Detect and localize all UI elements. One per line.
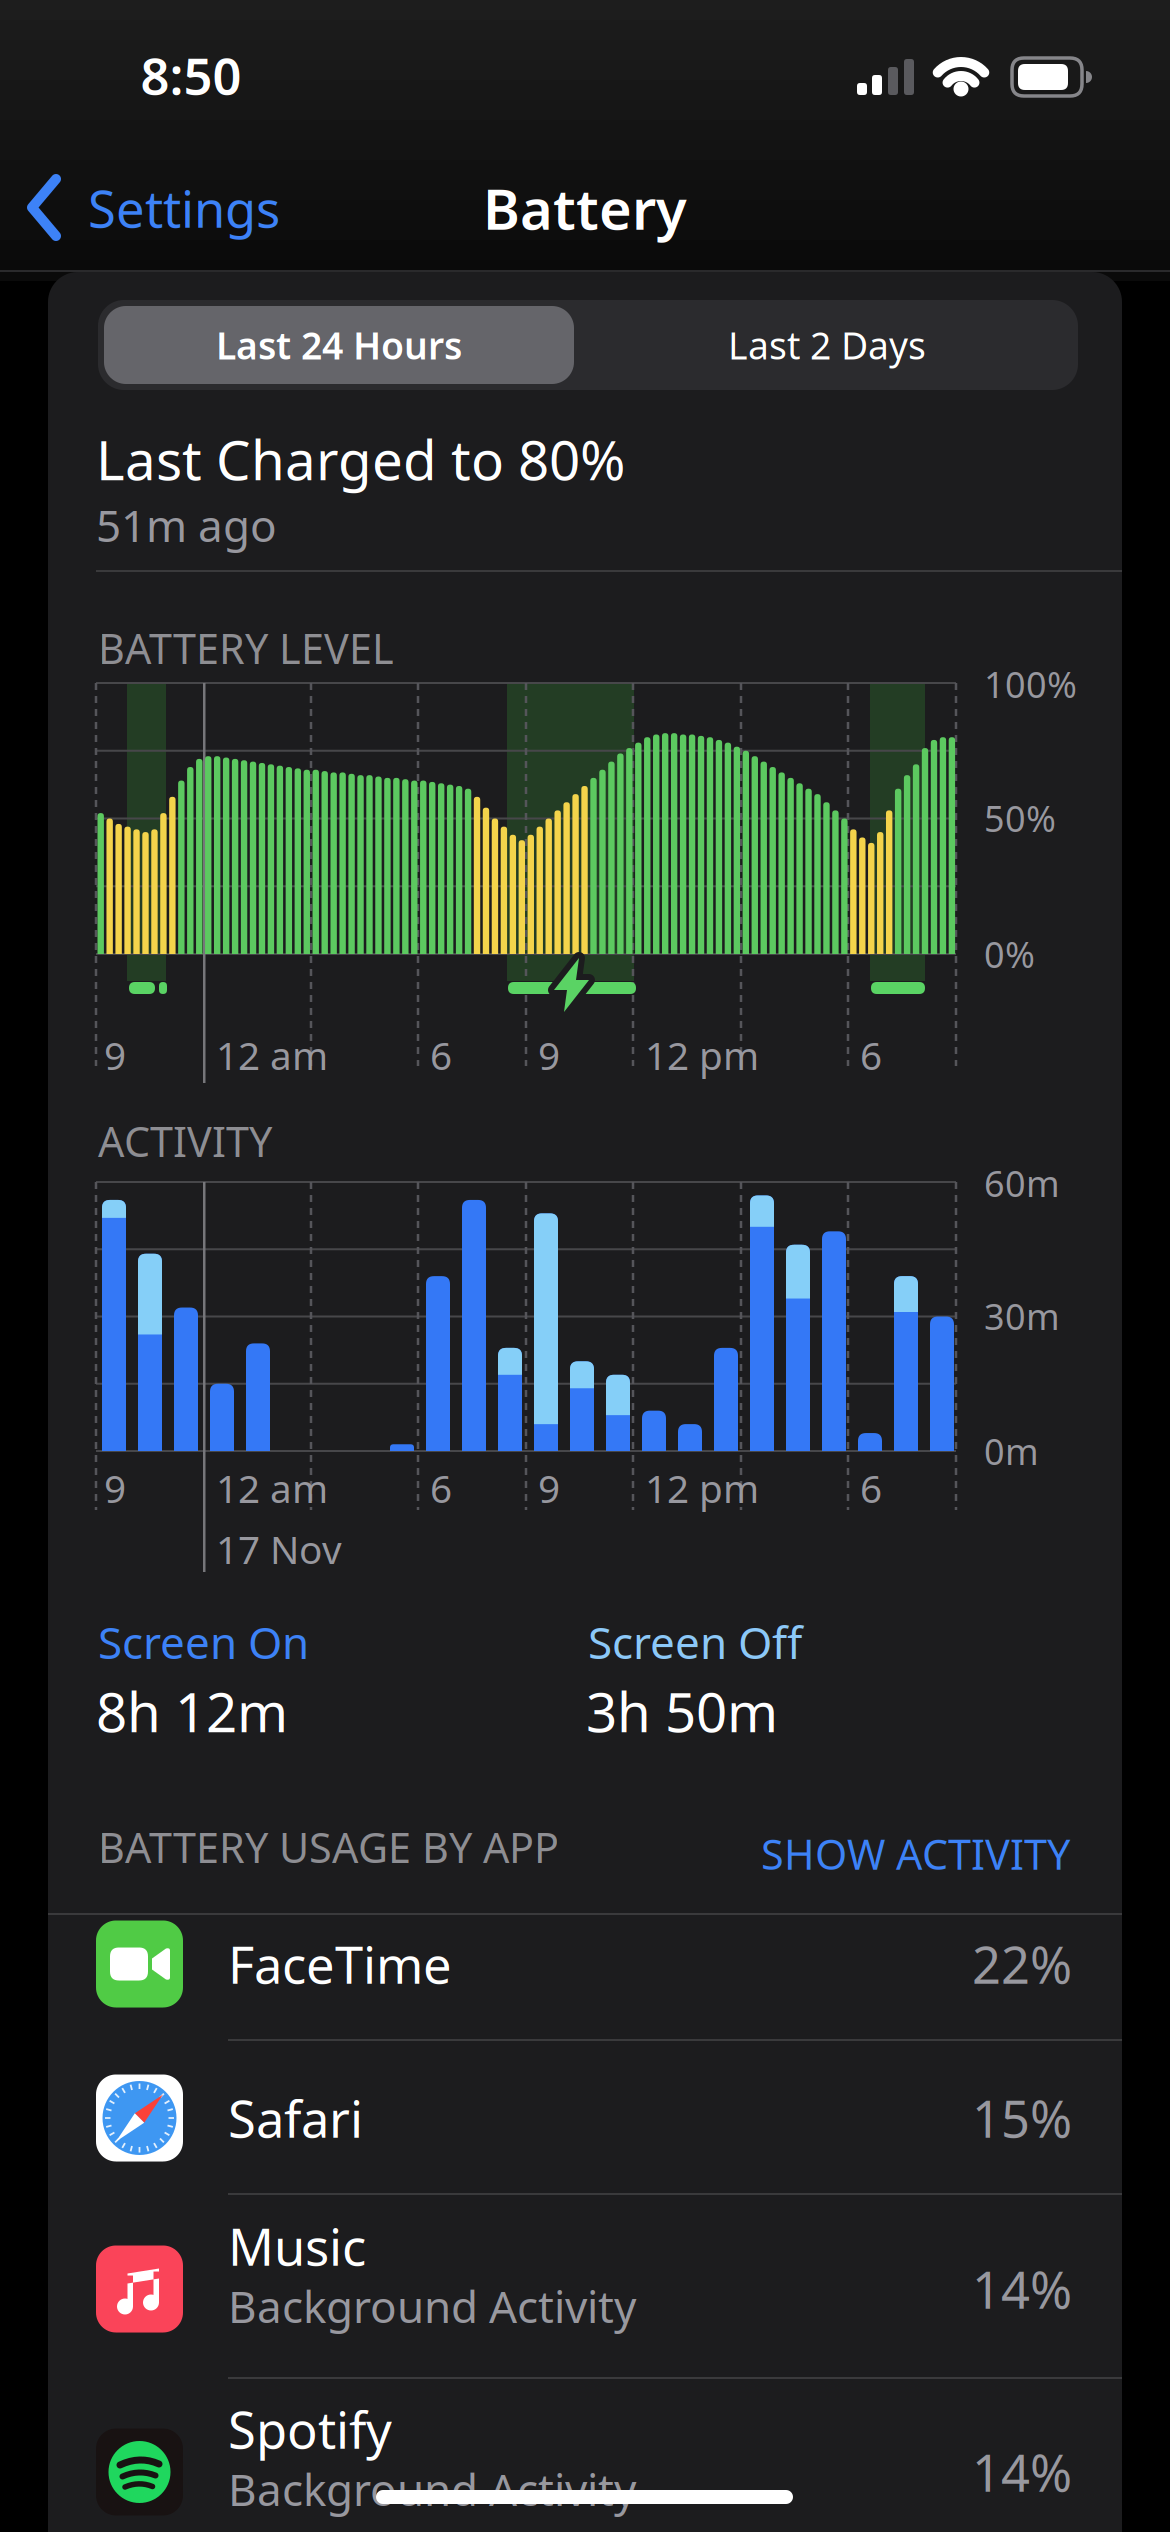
staticText: 12 pm (645, 1029, 759, 1081)
staticText: Spotify (228, 2395, 392, 2463)
staticText: 12 am (216, 1462, 328, 1514)
button[interactable]: Music (48, 2195, 1122, 2377)
staticText: 60m (984, 1159, 1060, 1207)
staticText: Music (228, 2212, 366, 2280)
button[interactable]: FaceTime (48, 1914, 1122, 2039)
staticText: 51m ago (96, 496, 277, 554)
staticText: FaceTime (228, 1930, 452, 1998)
staticText: BATTERY LEVEL (98, 621, 394, 675)
staticText: Battery (483, 171, 687, 245)
staticText: 12 pm (645, 1462, 759, 1514)
staticText: 30m (984, 1292, 1060, 1340)
staticText: 15% (972, 2084, 1072, 2152)
staticText: 22% (972, 1930, 1072, 1998)
staticText: ACTIVITY (98, 1114, 272, 1168)
staticText: Last Charged to 80% (96, 423, 625, 495)
staticText: 6 (430, 1462, 452, 1514)
staticText: 0m (984, 1427, 1039, 1475)
staticText: 17 Nov (216, 1523, 342, 1575)
staticText: 8:50 (140, 41, 241, 109)
staticText: 6 (430, 1029, 452, 1081)
staticText: Last 24 Hours (216, 320, 462, 370)
staticText: 9 (538, 1029, 560, 1081)
staticText: 9 (104, 1462, 126, 1514)
button[interactable]: Safari (48, 2041, 1122, 2193)
staticText: 9 (538, 1462, 560, 1514)
staticText: 9 (104, 1029, 126, 1081)
staticText: 14% (972, 2438, 1072, 2506)
staticText: SHOW ACTIVITY (761, 1826, 1070, 1881)
staticText: Background Activity (228, 2460, 636, 2518)
staticText: 0% (984, 930, 1035, 978)
button[interactable]: Spotify (48, 2379, 1122, 2532)
staticText: 6 (860, 1462, 882, 1514)
staticText: Settings (88, 174, 280, 242)
staticText: Screen On (98, 1613, 309, 1671)
staticText: 100% (984, 660, 1077, 708)
staticText: Last 2 Days (728, 320, 926, 370)
staticText: 8h 12m (96, 1675, 288, 1747)
staticText: BATTERY USAGE BY APP (98, 1820, 559, 1874)
staticText: 3h 50m (586, 1675, 778, 1747)
button[interactable]: Last 24 Hours (104, 306, 574, 384)
staticText: Background Activity (228, 2277, 636, 2335)
staticText: 50% (984, 794, 1056, 842)
button[interactable]: Last 2 Days (592, 306, 1062, 384)
staticText: 12 am (216, 1029, 328, 1081)
staticText: Screen Off (588, 1613, 802, 1671)
staticText: 6 (860, 1029, 882, 1081)
button[interactable]: SHOW ACTIVITY (550, 1817, 1070, 1877)
button[interactable]: Settings (28, 175, 428, 241)
staticText: 14% (972, 2255, 1072, 2323)
staticText: Safari (228, 2084, 363, 2152)
